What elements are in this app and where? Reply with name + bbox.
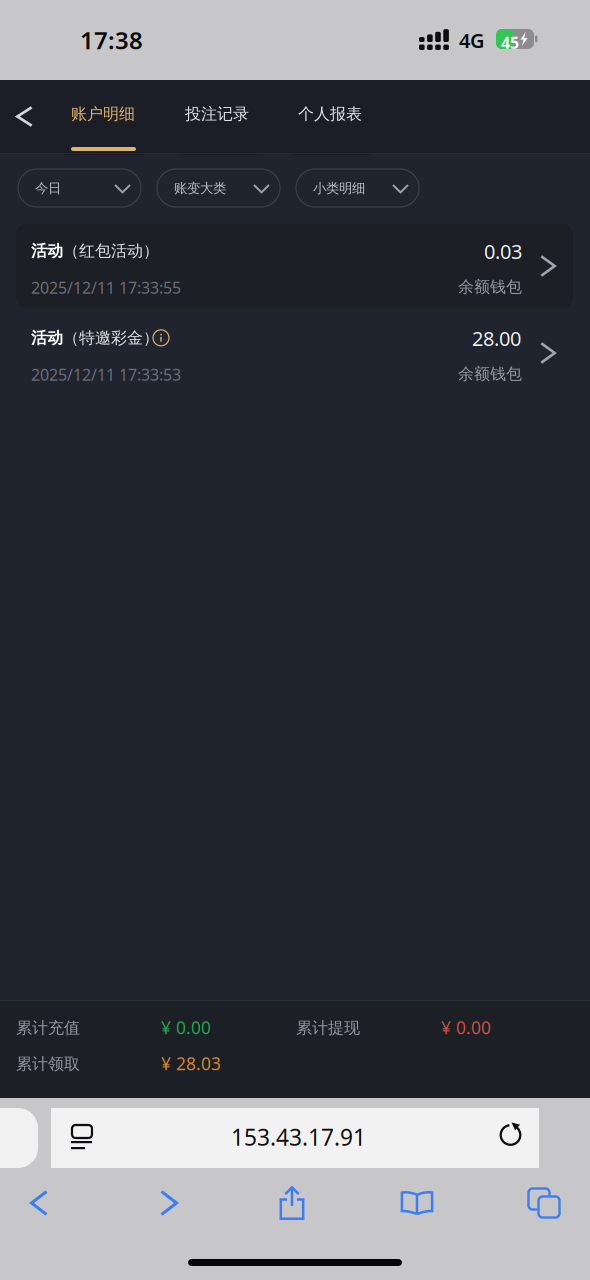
button[interactable]: Tabs	[496, 1180, 590, 1226]
button[interactable]: Share	[244, 1180, 340, 1226]
button[interactable]: Back	[0, 93, 48, 141]
staticText: 活动	[31, 241, 63, 261]
staticText: 28.00	[472, 325, 521, 352]
button[interactable]: Reload	[489, 1108, 539, 1168]
button[interactable]: 今日	[18, 169, 141, 207]
staticText: 活动	[31, 328, 63, 348]
button[interactable]: Page settings	[51, 1108, 107, 1168]
staticText: 账户明细	[71, 104, 135, 124]
button[interactable]: 投注记录	[178, 89, 258, 155]
staticText: 累计充值	[16, 1018, 80, 1038]
staticText: 17:38	[80, 24, 143, 56]
staticText: （特邀彩金）	[63, 328, 159, 348]
staticText: 累计领取	[16, 1054, 80, 1074]
staticText: 4G	[459, 27, 485, 54]
button[interactable]: 小类明细	[296, 169, 419, 207]
staticText: 153.43.17.91	[231, 1122, 366, 1152]
staticText: 2025/12/11 17:33:55	[31, 277, 181, 298]
staticText: 账变大类	[174, 180, 226, 196]
staticText: ¥ 0.00	[161, 1016, 211, 1039]
button[interactable]: Back	[0, 1180, 87, 1226]
button[interactable]: 活动	[0, 224, 590, 308]
button[interactable]: 活动	[0, 311, 590, 395]
staticText: 余额钱包	[458, 277, 522, 297]
staticText: ¥ 28.03	[161, 1052, 221, 1075]
staticText: （红包活动）	[63, 241, 159, 261]
button[interactable]: Forward	[121, 1180, 217, 1226]
staticText: 累计提现	[296, 1018, 360, 1038]
button[interactable]: 账户明细	[64, 89, 144, 155]
button[interactable]: 个人报表	[291, 89, 371, 155]
staticText: 小类明细	[313, 180, 365, 196]
staticText: ¥ 0.00	[441, 1016, 491, 1039]
staticText: 2025/12/11 17:33:53	[31, 364, 181, 385]
staticText: 45	[501, 32, 519, 53]
staticText: 今日	[35, 180, 61, 196]
button[interactable]: Bookmarks	[369, 1180, 465, 1226]
staticText: 个人报表	[298, 104, 362, 124]
staticText: 投注记录	[185, 104, 249, 124]
staticText: 0.03	[484, 238, 522, 265]
button[interactable]: 账变大类	[157, 169, 280, 207]
staticText: 余额钱包	[458, 364, 522, 384]
